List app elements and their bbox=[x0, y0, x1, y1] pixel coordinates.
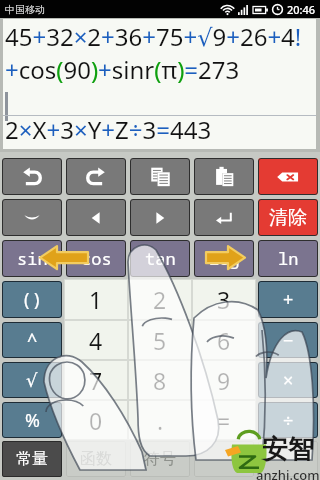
staticText: ÷ bbox=[283, 408, 294, 433]
staticText: = bbox=[217, 405, 231, 436]
button[interactable]: 6 bbox=[192, 320, 256, 360]
staticText: 清除 bbox=[269, 206, 307, 230]
staticText: sin bbox=[17, 247, 48, 270]
staticText: ( ) bbox=[24, 287, 40, 312]
staticText: 9 bbox=[217, 365, 231, 396]
button[interactable]: Redo bbox=[66, 158, 126, 195]
button[interactable]: 3 bbox=[192, 279, 256, 320]
button[interactable]: 7 bbox=[64, 360, 128, 400]
button[interactable]: ^ bbox=[2, 322, 62, 358]
button[interactable]: − bbox=[258, 322, 318, 358]
button[interactable]: 清除 bbox=[258, 199, 318, 236]
staticText: 6 bbox=[217, 325, 231, 356]
button[interactable]: ln bbox=[258, 240, 318, 277]
button[interactable]: tan bbox=[130, 240, 190, 277]
staticText: 符号 bbox=[144, 449, 176, 469]
button[interactable]: 函数 bbox=[66, 441, 126, 477]
button[interactable]: 4 bbox=[64, 320, 128, 360]
button[interactable]: sin bbox=[2, 240, 62, 277]
button[interactable]: 9 bbox=[192, 360, 256, 400]
button[interactable]: Delete bbox=[258, 158, 318, 195]
button[interactable]: % bbox=[2, 402, 62, 438]
staticText: 4 bbox=[89, 325, 103, 356]
staticText: × bbox=[283, 368, 294, 393]
button[interactable]: Left bbox=[66, 199, 126, 236]
button[interactable]: Undo bbox=[2, 158, 62, 195]
button[interactable]: ÷ bbox=[258, 402, 318, 438]
button[interactable]: cos bbox=[66, 240, 126, 277]
staticText: 0 bbox=[89, 405, 103, 436]
staticText: + bbox=[283, 287, 294, 312]
button[interactable]: 常量 bbox=[2, 441, 62, 477]
staticText: cos bbox=[81, 247, 112, 270]
staticText: 2 bbox=[153, 284, 167, 315]
button[interactable]: Enter bbox=[194, 199, 254, 236]
staticText: √ bbox=[26, 370, 38, 391]
button[interactable]: . bbox=[128, 400, 192, 440]
staticText: log bbox=[209, 247, 240, 270]
button[interactable]: log bbox=[194, 240, 254, 277]
staticText: 2×X+3×Y+Z÷3=443 bbox=[5, 113, 212, 146]
button[interactable]: Copy bbox=[130, 158, 190, 195]
staticText: anzhi.com bbox=[256, 466, 320, 480]
staticText: 函数 bbox=[80, 449, 112, 469]
button[interactable]: Collapse bbox=[2, 199, 62, 236]
button[interactable]: √ bbox=[2, 362, 62, 398]
staticText: . bbox=[157, 405, 164, 436]
button[interactable]: 0 bbox=[64, 400, 128, 440]
staticText: 5 bbox=[153, 325, 167, 356]
staticText: ln bbox=[278, 247, 299, 270]
staticText: 8 bbox=[153, 365, 167, 396]
staticText: − bbox=[283, 328, 294, 353]
staticText: 45+32×2+36+75+√9+26+4! bbox=[5, 20, 302, 53]
staticText: 安智 bbox=[262, 433, 314, 466]
button[interactable]: = bbox=[192, 400, 256, 440]
staticText: +cos(90)+sinr(π)=273 bbox=[5, 53, 240, 86]
staticText: 中国移动 bbox=[5, 3, 45, 16]
button[interactable]: ( ) bbox=[2, 281, 62, 318]
staticText: 3 bbox=[217, 284, 231, 315]
button[interactable]: + bbox=[258, 281, 318, 318]
button[interactable]: Right bbox=[130, 199, 190, 236]
button[interactable]: 5 bbox=[128, 320, 192, 360]
staticText: 常量 bbox=[16, 449, 48, 469]
staticText: ^ bbox=[27, 328, 38, 353]
button[interactable]: 2 bbox=[128, 279, 192, 320]
staticText: 20:46 bbox=[287, 2, 316, 17]
staticText: 1 bbox=[89, 284, 103, 315]
staticText: 7 bbox=[89, 365, 103, 396]
staticText: % bbox=[25, 408, 40, 433]
button[interactable] bbox=[258, 441, 318, 477]
button[interactable]: × bbox=[258, 362, 318, 398]
button[interactable]: 8 bbox=[128, 360, 192, 400]
button[interactable]: 1 bbox=[64, 279, 128, 320]
button[interactable]: Paste bbox=[194, 158, 254, 195]
button[interactable] bbox=[194, 441, 254, 477]
staticText: tan bbox=[145, 247, 176, 270]
button[interactable]: 符号 bbox=[130, 441, 190, 477]
